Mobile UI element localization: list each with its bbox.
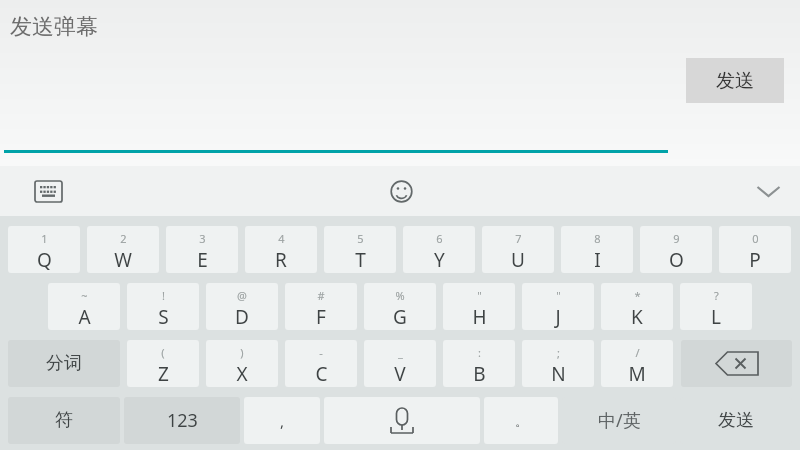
staticText: 1 [41, 231, 48, 246]
button[interactable]: ( [127, 340, 199, 387]
button[interactable]: 4 [245, 226, 317, 273]
button[interactable]: 5 [324, 226, 396, 273]
staticText: 3 [199, 231, 206, 246]
staticText: U [511, 247, 525, 273]
button[interactable]: 发送 [686, 58, 784, 103]
staticText: L [711, 304, 721, 330]
staticText: P [749, 247, 761, 273]
staticText: S [158, 304, 169, 330]
staticText: X [236, 361, 248, 387]
staticText: ; [557, 345, 560, 360]
staticText: E [197, 247, 208, 273]
button[interactable]: - [285, 340, 357, 387]
staticText: 123 [167, 408, 198, 433]
staticText: 中/英 [598, 408, 641, 433]
staticText: 6 [436, 231, 443, 246]
button[interactable]: Voice input [324, 397, 480, 444]
staticText: - [319, 345, 323, 360]
button[interactable]: 1 [8, 226, 80, 273]
button[interactable]: ! [127, 283, 199, 330]
staticText: ) [240, 345, 244, 360]
button[interactable]: Keyboard layout [26, 168, 70, 214]
staticText: A [78, 304, 91, 330]
staticText: 4 [278, 231, 285, 246]
staticText: D [235, 304, 249, 330]
button[interactable]: 7 [482, 226, 554, 273]
staticText: * [634, 288, 641, 303]
staticText: 9 [673, 231, 680, 246]
button[interactable]: ) [206, 340, 278, 387]
button[interactable]: Backspace [681, 340, 792, 387]
button[interactable]: " [443, 283, 515, 330]
staticText: % [395, 288, 405, 303]
staticText: 发送 [718, 409, 754, 432]
button[interactable]: * [601, 283, 673, 330]
button[interactable]: % [364, 283, 436, 330]
staticText: 分词 [46, 352, 82, 375]
staticText: 5 [357, 231, 364, 246]
button[interactable]: Hide keyboard [746, 168, 790, 214]
button[interactable]: / [601, 340, 673, 387]
button[interactable]: 。 [484, 397, 558, 444]
button[interactable]: : [443, 340, 515, 387]
button[interactable]: , [244, 397, 320, 444]
staticText: / [635, 345, 640, 360]
button[interactable]: 符 [8, 397, 120, 444]
button[interactable]: ~ [48, 283, 120, 330]
button[interactable]: 123 [124, 397, 240, 444]
staticText: 7 [515, 231, 522, 246]
button[interactable]: 0 [719, 226, 791, 273]
staticText: O [669, 247, 684, 273]
staticText: M [628, 361, 646, 387]
staticText: ( [161, 345, 165, 360]
staticText: # [317, 288, 325, 303]
staticText: Z [158, 361, 169, 387]
staticText: 发送 [716, 69, 754, 93]
staticText: : [478, 345, 481, 360]
button[interactable]: " [522, 283, 594, 330]
button[interactable]: 发送 [680, 397, 792, 444]
staticText: Q [37, 247, 52, 273]
button[interactable]: 8 [561, 226, 633, 273]
staticText: , [280, 411, 285, 431]
staticText: V [394, 361, 406, 387]
staticText: Y [434, 247, 445, 273]
button[interactable]: 2 [87, 226, 159, 273]
staticText: " [556, 288, 561, 303]
button[interactable]: 9 [640, 226, 712, 273]
staticText: 0 [752, 231, 759, 246]
button[interactable]: @ [206, 283, 278, 330]
staticText: _ [398, 345, 403, 360]
staticText: 。 [515, 413, 528, 429]
button[interactable]: 3 [166, 226, 238, 273]
staticText: 8 [594, 231, 601, 246]
button[interactable]: # [285, 283, 357, 330]
staticText: I [594, 247, 601, 273]
staticText: 发送弹幕 [10, 13, 98, 41]
button[interactable]: ; [522, 340, 594, 387]
button[interactable]: 中/英 [562, 397, 676, 444]
staticText: K [631, 304, 643, 330]
staticText: " [477, 288, 482, 303]
staticText: W [114, 247, 132, 273]
staticText: R [275, 247, 287, 273]
button[interactable]: _ [364, 340, 436, 387]
staticText: C [315, 361, 328, 387]
staticText: T [355, 247, 366, 273]
staticText: F [316, 304, 326, 330]
staticText: @ [237, 288, 247, 303]
staticText: 符 [55, 409, 73, 432]
staticText: ! [162, 288, 165, 303]
staticText: B [473, 361, 486, 387]
staticText: ~ [81, 288, 88, 303]
staticText: H [472, 304, 487, 330]
staticText: N [551, 361, 566, 387]
staticText: 2 [120, 231, 127, 246]
button[interactable]: ? [680, 283, 752, 330]
button[interactable]: 6 [403, 226, 475, 273]
button[interactable]: Emoji [379, 168, 423, 214]
staticText: J [555, 304, 561, 330]
staticText: ? [714, 288, 719, 303]
button[interactable]: 分词 [8, 340, 120, 387]
staticText: G [393, 304, 407, 330]
